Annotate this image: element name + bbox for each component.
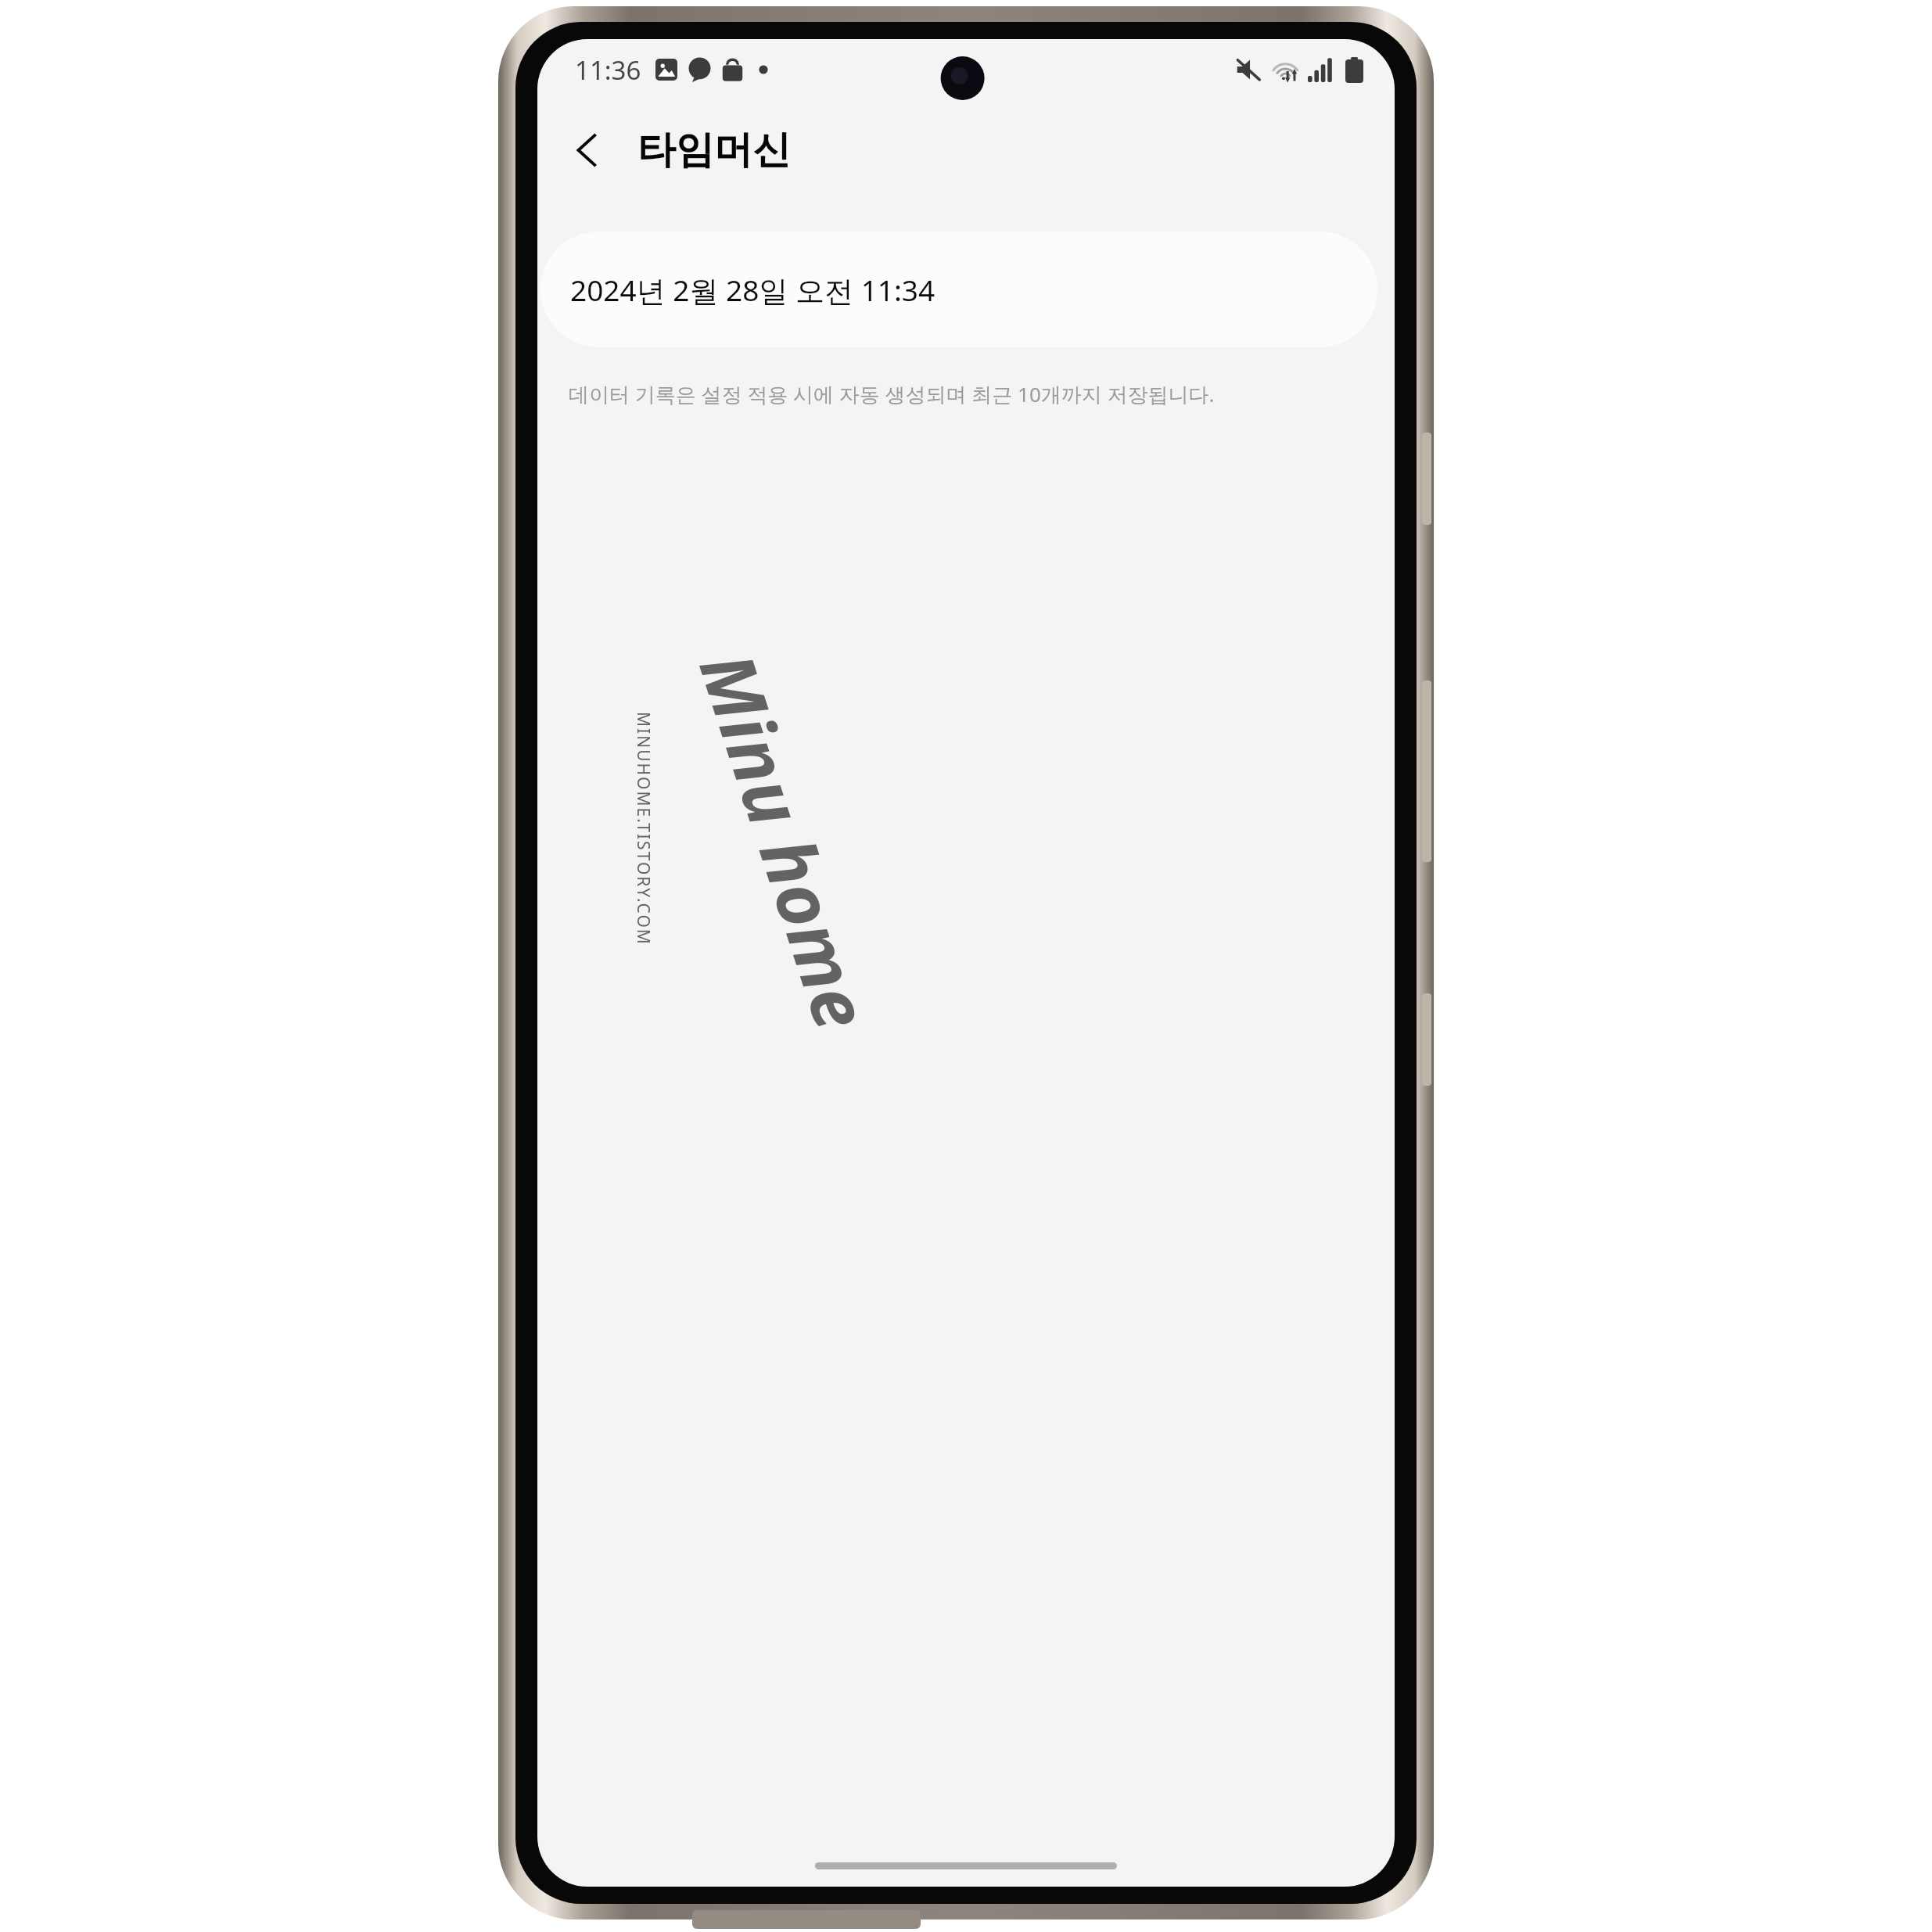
staticText: 11:36 (575, 52, 641, 88)
staticText: Minu home (678, 640, 894, 1042)
button[interactable]: 2024년 2월 28일 오전 11:34 (540, 232, 1377, 347)
staticText: 2024년 2월 28일 오전 11:34 (570, 270, 935, 310)
staticText: MINUHOME.TISTORY.COM (632, 712, 655, 946)
staticText: 데이터 기록은 설정 적용 시에 자동 생성되며 최근 10개까지 저장됩니다. (569, 380, 1215, 408)
staticText: 타임머신 (637, 126, 791, 174)
button[interactable]: Back (553, 116, 622, 185)
